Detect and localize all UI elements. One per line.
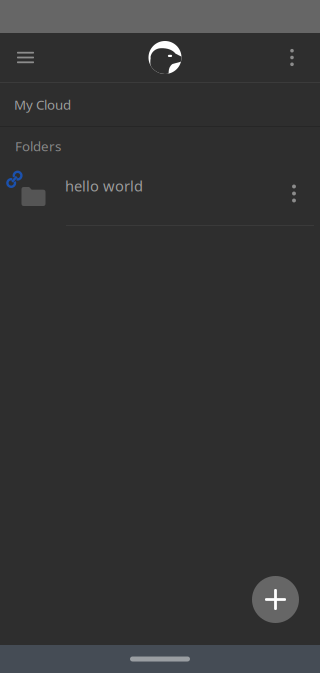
staticText: My Cloud [14,96,71,113]
button[interactable]: More options [264,33,320,82]
button[interactable]: Folder actions [270,165,318,222]
staticText: hello world [65,176,143,195]
button[interactable]: Menu [0,33,56,82]
staticText: Folders [15,137,61,155]
button[interactable]: hello world [0,165,320,226]
button[interactable]: Add [252,576,299,623]
